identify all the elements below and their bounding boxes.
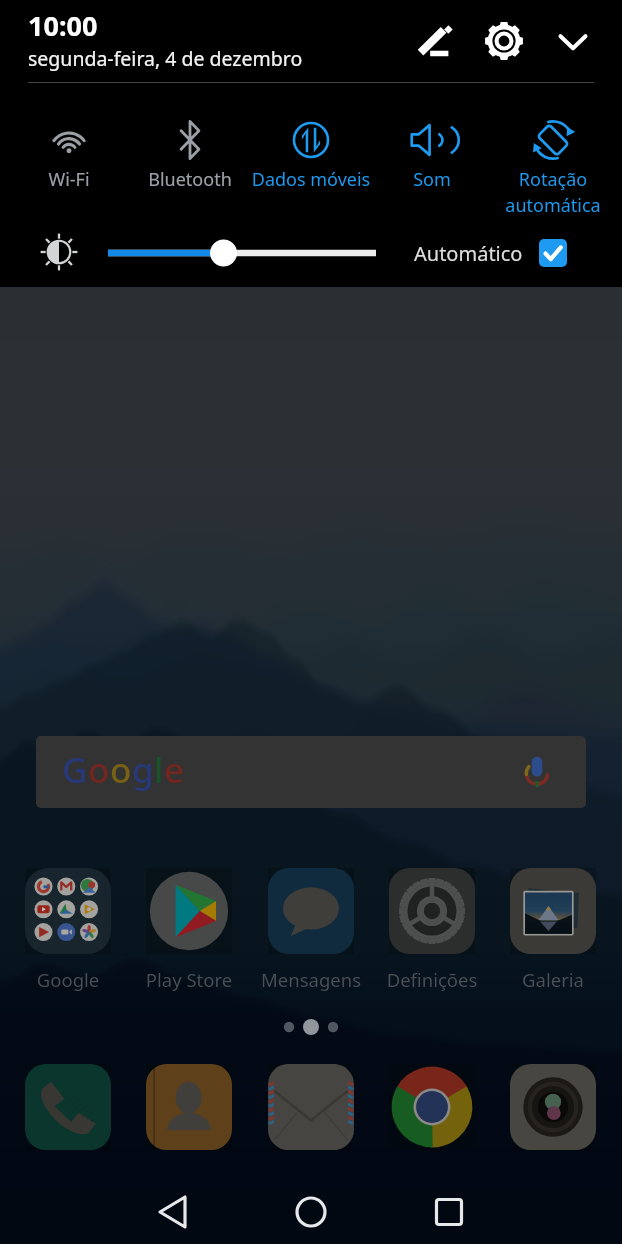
staticText: Rotação automática [453,167,622,218]
button[interactable]: Contactos [146,1064,232,1150]
button[interactable] [371,96,493,220]
staticText: Dados móveis [211,167,411,192]
button[interactable]: Edit [410,17,458,65]
button[interactable]: Brightness [36,229,82,275]
staticText: Automático [414,240,523,267]
button[interactable]: Recent apps [415,1178,483,1244]
staticText: l [154,746,164,794]
staticText: Wi-Fi [0,167,169,192]
button[interactable]: Google search [36,736,586,808]
button[interactable]: Email [268,1064,354,1150]
button[interactable]: Telefone [25,1064,111,1150]
button[interactable]: Galeria [510,868,596,954]
button[interactable]: Settings [480,17,528,65]
button[interactable]: Collapse [549,17,597,65]
button[interactable]: Home [277,1178,345,1244]
staticText: e [164,746,185,794]
staticText: 10:00 [28,7,98,44]
button[interactable]: Automático [414,232,567,274]
button[interactable]: Play Store [146,868,232,954]
staticText: G [62,746,88,794]
button[interactable]: Google [25,868,111,954]
button[interactable] [492,96,614,220]
staticText: o [110,746,132,794]
staticText: o [88,746,110,794]
button[interactable]: Back [140,1178,208,1244]
button[interactable] [129,96,251,220]
staticText: Bluetooth [90,167,290,192]
staticText: Som [332,167,532,192]
button[interactable]: Mensagens [268,868,354,954]
staticText: segunda-feira, 4 de dezembro [28,45,303,72]
button[interactable]: Chrome [389,1064,475,1150]
button[interactable] [250,96,372,220]
staticText: Google [8,967,128,992]
button[interactable]: Brightness slider [100,231,384,273]
staticText: Galeria [493,967,613,992]
staticText: Mensagens [251,967,371,992]
staticText: Play Store [129,967,249,992]
button[interactable]: Câmara [510,1064,596,1150]
staticText: Definições [372,967,492,992]
staticText: g [132,746,154,794]
button[interactable] [8,96,130,220]
button[interactable]: Definições [389,868,475,954]
